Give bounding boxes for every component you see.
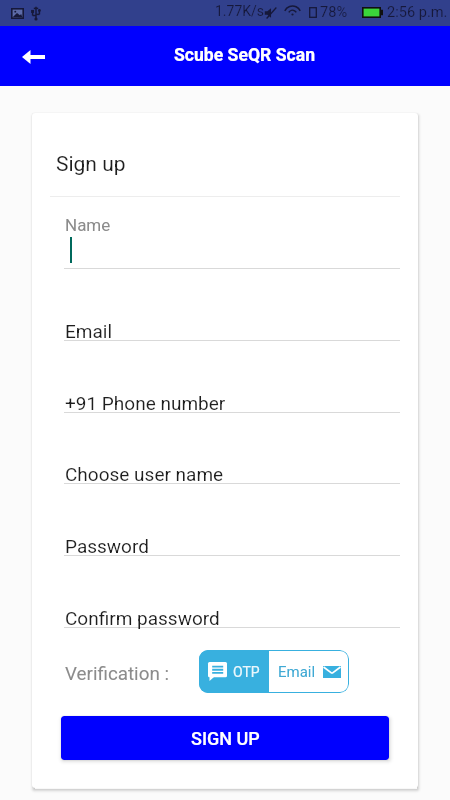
staticText: OTP [233, 664, 260, 680]
staticText: 78% [320, 3, 348, 20]
staticText: Scube SeQR Scan [174, 45, 316, 66]
staticText: 1.77K/s [215, 3, 265, 19]
staticText: SIGN UP [191, 728, 260, 749]
button[interactable]: SIGN UP [61, 716, 389, 760]
staticText: Email [65, 320, 113, 342]
button[interactable]: OTP [199, 650, 269, 693]
staticText: Password [65, 535, 149, 557]
button[interactable]: Email [65, 320, 400, 342]
staticText: Email [278, 663, 316, 681]
button[interactable]: Back [11, 34, 56, 79]
button[interactable]: Password [65, 535, 400, 557]
staticText: 2:56 p.m. [387, 3, 448, 20]
button[interactable]: +91 Phone number [65, 392, 400, 414]
staticText: +91 Phone number [65, 392, 226, 414]
staticText: Confirm password [65, 607, 220, 629]
staticText: Name [65, 215, 111, 235]
button[interactable]: Name [65, 215, 400, 265]
button[interactable]: Choose user name [65, 463, 400, 485]
button[interactable]: Email [269, 650, 349, 693]
button[interactable]: Confirm password [65, 607, 400, 629]
staticText: Sign up [56, 152, 126, 177]
staticText: Verification : [65, 663, 169, 685]
staticText: Choose user name [65, 463, 224, 485]
